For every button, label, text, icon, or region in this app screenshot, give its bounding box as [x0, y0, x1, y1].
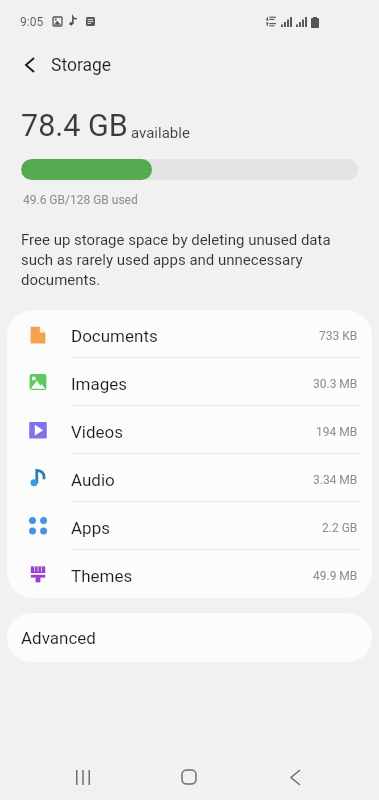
staticText: 30.3 MB — [313, 377, 358, 391]
staticText: 194 MB — [316, 425, 358, 439]
button[interactable]: Audio — [7, 454, 372, 502]
staticText: Themes — [71, 566, 133, 586]
staticText: 49.9 MB — [313, 569, 358, 583]
staticText: Advanced — [21, 628, 96, 648]
button[interactable]: Videos — [7, 406, 372, 454]
button[interactable]: Home — [165, 753, 213, 800]
staticText: 78.4 GB — [21, 108, 128, 144]
staticText: Storage — [51, 55, 112, 76]
button[interactable]: Documents — [7, 310, 372, 358]
button[interactable]: Apps — [7, 502, 372, 550]
staticText: Free up storage space by deleting unused… — [21, 231, 331, 288]
button[interactable]: Advanced — [7, 613, 372, 662]
staticText: Documents — [71, 326, 158, 346]
button[interactable]: Navigate up — [8, 43, 52, 87]
staticText: Images — [71, 374, 128, 394]
staticText: available — [131, 124, 190, 142]
staticText: Audio — [71, 470, 115, 490]
button[interactable]: Themes — [7, 550, 372, 598]
staticText: Videos — [71, 422, 124, 442]
button[interactable]: Images — [7, 358, 372, 406]
staticText: 733 KB — [319, 329, 358, 343]
staticText: 3.34 MB — [313, 473, 358, 487]
button[interactable]: Recent apps — [59, 753, 107, 800]
staticText: Apps — [71, 518, 110, 538]
staticText: 2.2 GB — [322, 521, 358, 535]
button[interactable]: Back — [271, 753, 319, 800]
staticText: 9:05 — [20, 15, 44, 29]
staticText: 49.6 GB/128 GB used — [23, 193, 138, 207]
